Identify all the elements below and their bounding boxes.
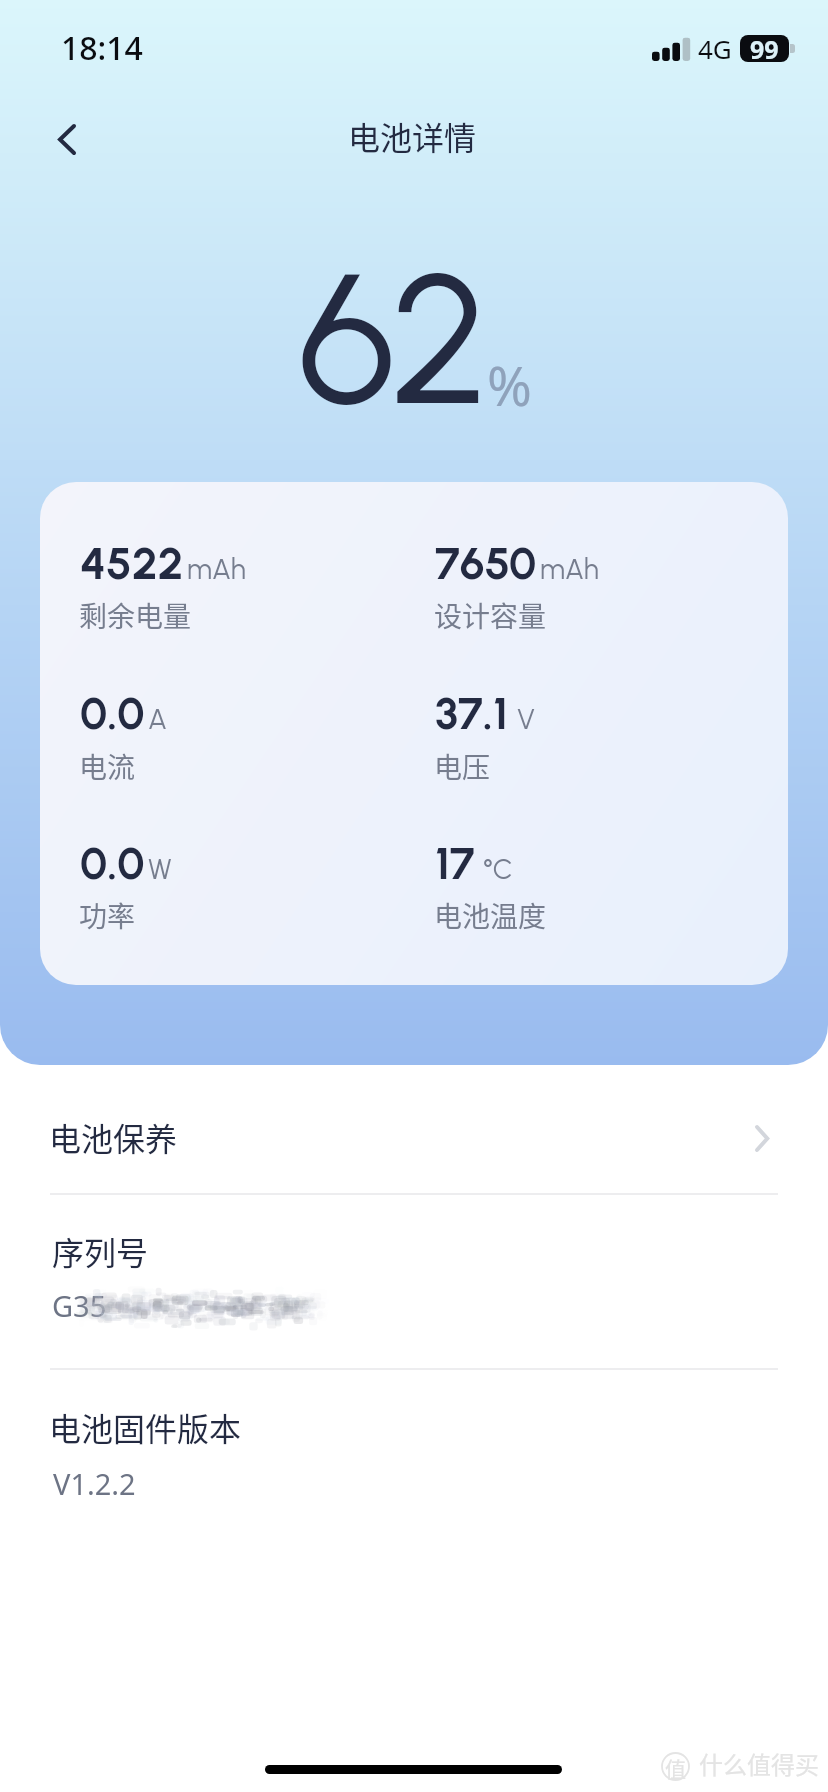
staticText: 0.0 (80, 836, 145, 890)
staticText: G35 (52, 1286, 107, 1325)
staticText: 电池详情 (348, 113, 477, 159)
button[interactable]: 电池固件版本 (0, 1370, 828, 1540)
staticText: 设计容量 (434, 595, 547, 636)
other: Battery 99 percent (740, 35, 796, 63)
other: Mobile signal (652, 37, 691, 61)
staticText: mAh (187, 552, 246, 586)
button[interactable]: 序列号 (0, 1195, 828, 1368)
staticText: W (148, 852, 172, 886)
staticText: V (517, 702, 535, 736)
staticText: 电池保养 (49, 1114, 178, 1160)
staticText: 值 (665, 1753, 686, 1782)
staticText: 18:14 (61, 26, 143, 70)
staticText: 功率 (79, 895, 136, 936)
staticText: mAh (540, 552, 599, 586)
staticText: V1.2.2 (53, 1464, 136, 1503)
staticText: 17 (435, 836, 475, 890)
staticText: 4G (698, 31, 732, 66)
staticText: 什么值得买 (699, 1746, 819, 1781)
staticText: 0.0 (80, 686, 145, 740)
staticText: 电池固件版本 (49, 1404, 242, 1450)
staticText: A (148, 702, 167, 736)
staticText: % (487, 348, 532, 422)
staticText: 序列号 (52, 1228, 149, 1274)
staticText: °C (483, 852, 513, 886)
button[interactable]: 电池保养 (0, 1080, 828, 1193)
staticText: 37.1 (435, 686, 508, 740)
staticText: 剩余电量 (79, 595, 192, 636)
staticText: 62 (298, 230, 484, 448)
button[interactable]: Back (25, 98, 109, 182)
staticText: 4522 (80, 536, 184, 590)
staticText: 7650 (435, 536, 537, 590)
staticText: 电压 (434, 746, 491, 787)
staticText: 99 (750, 32, 779, 60)
staticText: 电池温度 (434, 895, 547, 936)
staticText: 电流 (79, 746, 136, 787)
